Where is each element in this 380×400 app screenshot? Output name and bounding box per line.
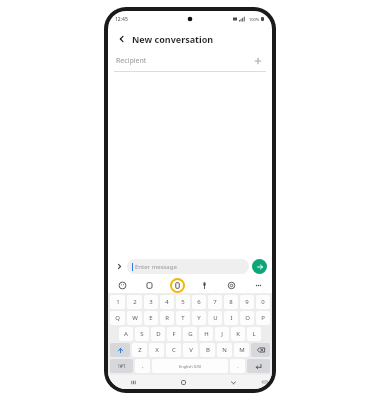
- button[interactable]: Attach file: [169, 277, 185, 293]
- button[interactable]: Home: [158, 375, 208, 389]
- staticText: R: [165, 314, 169, 322]
- staticText: English (US): [179, 364, 202, 369]
- button[interactable]: More options: [251, 278, 265, 292]
- staticText: Q: [115, 314, 120, 322]
- staticText: A: [124, 330, 128, 338]
- button[interactable]: Voice: [197, 278, 211, 292]
- staticText: 1: [116, 298, 120, 306]
- button[interactable]: Z: [132, 343, 147, 357]
- button[interactable]: U: [208, 311, 222, 325]
- staticText: 12:45: [115, 16, 128, 23]
- button[interactable]: I: [224, 311, 238, 325]
- staticText: T: [181, 314, 185, 322]
- button[interactable]: F: [167, 327, 181, 341]
- staticText: H: [204, 330, 209, 338]
- button[interactable]: Hide keyboard: [208, 375, 258, 389]
- button[interactable]: Location: [224, 278, 238, 292]
- button[interactable]: B: [200, 343, 215, 357]
- staticText: 6: [197, 298, 201, 306]
- button[interactable]: 7: [208, 295, 222, 309]
- staticText: 3: [149, 298, 153, 306]
- staticText: !#1: [118, 363, 126, 370]
- button[interactable]: 0: [256, 295, 270, 309]
- button[interactable]: Shift: [110, 343, 130, 357]
- button[interactable]: A: [119, 327, 133, 341]
- button[interactable]: O: [240, 311, 254, 325]
- staticText: 5: [181, 298, 185, 306]
- staticText: Y: [197, 314, 201, 322]
- button[interactable]: Y: [192, 311, 206, 325]
- staticText: 2: [133, 298, 137, 306]
- button[interactable]: C: [166, 343, 181, 357]
- button[interactable]: V: [183, 343, 198, 357]
- button[interactable]: W: [127, 311, 142, 325]
- button[interactable]: English (US): [152, 359, 228, 373]
- button[interactable]: Gallery: [142, 278, 156, 292]
- button[interactable]: 4: [160, 295, 174, 309]
- staticText: M: [239, 346, 245, 354]
- button[interactable]: Expand: [113, 260, 125, 272]
- button[interactable]: E: [144, 311, 158, 325]
- button[interactable]: 6: [192, 295, 206, 309]
- button[interactable]: Keyboard layout: [258, 375, 272, 389]
- staticText: 9: [245, 298, 249, 306]
- button[interactable]: Send: [252, 259, 267, 274]
- button[interactable]: .: [230, 359, 245, 373]
- button[interactable]: !#1: [110, 359, 133, 373]
- button[interactable]: G: [183, 327, 197, 341]
- staticText: N: [222, 346, 227, 354]
- staticText: E: [149, 314, 153, 322]
- staticText: L: [252, 330, 256, 338]
- staticText: 0: [261, 298, 265, 306]
- staticText: ,: [142, 363, 144, 370]
- staticText: X: [155, 346, 159, 354]
- staticText: O: [245, 314, 250, 322]
- button[interactable]: Add recipient: [252, 55, 264, 67]
- staticText: .: [237, 363, 239, 370]
- button[interactable]: K: [231, 327, 245, 341]
- button[interactable]: 9: [240, 295, 254, 309]
- button[interactable]: J: [215, 327, 229, 341]
- staticText: I: [230, 314, 233, 322]
- button[interactable]: Recents: [108, 375, 158, 389]
- staticText: P: [261, 314, 265, 322]
- button[interactable]: ,: [135, 359, 150, 373]
- button[interactable]: H: [199, 327, 213, 341]
- button[interactable]: N: [217, 343, 232, 357]
- button[interactable]: L: [247, 327, 261, 341]
- button[interactable]: Enter: [247, 359, 270, 373]
- staticText: Recipient: [116, 56, 147, 66]
- button[interactable]: Backspace: [251, 343, 270, 357]
- button[interactable]: Enter message: [127, 259, 249, 274]
- button[interactable]: 5: [176, 295, 190, 309]
- staticText: 4: [165, 298, 169, 306]
- staticText: New conversation: [132, 33, 214, 45]
- staticText: Z: [138, 346, 142, 354]
- button[interactable]: S: [135, 327, 149, 341]
- button[interactable]: Q: [110, 311, 125, 325]
- staticText: 8: [229, 298, 233, 306]
- staticText: V: [189, 346, 193, 354]
- staticText: D: [156, 330, 161, 338]
- button[interactable]: Recipient: [108, 51, 272, 71]
- staticText: F: [172, 330, 176, 338]
- button[interactable]: X: [149, 343, 164, 357]
- staticText: 100%: [249, 17, 260, 22]
- button[interactable]: Back: [115, 32, 129, 46]
- button[interactable]: M: [234, 343, 249, 357]
- button[interactable]: Emoji: [115, 278, 129, 292]
- staticText: K: [236, 330, 240, 338]
- staticText: G: [188, 330, 193, 338]
- button[interactable]: T: [176, 311, 190, 325]
- button[interactable]: P: [256, 311, 270, 325]
- button[interactable]: 2: [127, 295, 142, 309]
- button[interactable]: D: [151, 327, 165, 341]
- button[interactable]: 3: [144, 295, 158, 309]
- button[interactable]: R: [160, 311, 174, 325]
- staticText: C: [172, 346, 176, 354]
- staticText: S: [140, 330, 144, 338]
- button[interactable]: 8: [224, 295, 238, 309]
- button[interactable]: 1: [110, 295, 125, 309]
- staticText: B: [206, 346, 210, 354]
- staticText: U: [213, 314, 218, 322]
